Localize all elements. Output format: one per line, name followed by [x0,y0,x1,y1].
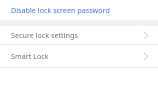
other: Secure lock settings [143,31,149,40]
button[interactable]: Disable lock screen password [0,0,158,20]
other: Smart Lock [143,52,149,61]
staticText: Smart Lock [11,51,49,61]
staticText: Disable lock screen password [11,5,110,15]
button[interactable]: Secure lock settings [0,26,158,44]
button[interactable]: Smart Lock [0,45,158,67]
staticText: Secure lock settings [11,30,78,40]
